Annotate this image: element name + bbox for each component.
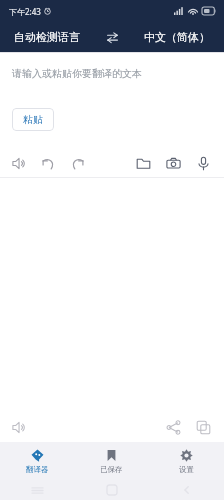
staticText: 已保存	[100, 465, 123, 474]
button[interactable]: 已保存	[74, 442, 149, 480]
button[interactable]: 翻译器	[0, 442, 74, 480]
button[interactable]: Share	[161, 415, 185, 439]
staticText: 自动检测语言	[14, 30, 80, 44]
button[interactable]: 自动检测语言	[0, 22, 94, 52]
staticText: 请输入或粘贴你要翻译的文本	[12, 67, 142, 80]
button[interactable]: 粘贴	[12, 108, 54, 131]
button[interactable]: Speak translation	[7, 415, 31, 439]
button[interactable]: Camera	[161, 151, 185, 175]
button[interactable]: Swap languages	[94, 22, 130, 52]
button[interactable]: 中文（简体）	[130, 22, 224, 52]
staticText: 中文（简体）	[144, 30, 210, 44]
button[interactable]: 设置	[149, 442, 224, 480]
button[interactable]: Undo	[36, 151, 60, 175]
staticText: 翻译器	[26, 465, 49, 474]
button[interactable]: 请输入或粘贴你要翻译的文本	[0, 53, 224, 149]
button[interactable]: Redo	[65, 151, 89, 175]
staticText: 设置	[179, 465, 194, 474]
staticText: 粘贴	[23, 113, 43, 126]
button[interactable]: Copy	[191, 415, 215, 439]
button[interactable]: Documents	[131, 151, 155, 175]
button[interactable]: Speak	[7, 151, 31, 175]
staticText: 下午2:43	[9, 6, 41, 17]
button[interactable]: Microphone	[191, 151, 215, 175]
